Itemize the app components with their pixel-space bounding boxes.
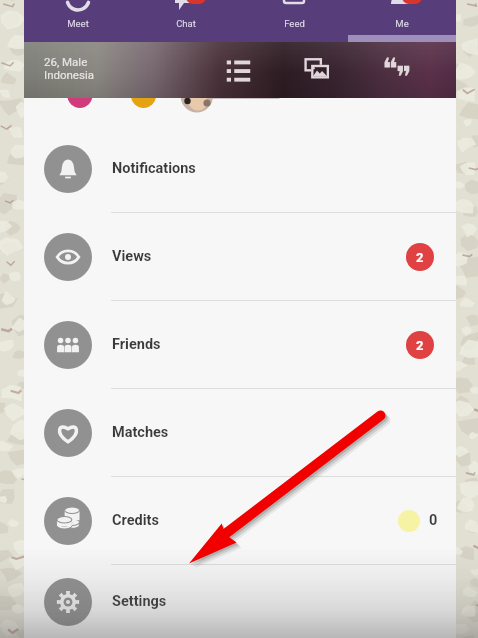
button[interactable]: List view xyxy=(214,42,262,98)
button[interactable]: Feed xyxy=(240,0,348,42)
button[interactable]: Credits xyxy=(24,477,456,564)
button[interactable]: Me xyxy=(348,0,456,42)
staticText: 2 xyxy=(416,250,424,265)
staticText: Chat xyxy=(176,18,196,29)
staticText: Credits xyxy=(112,512,159,529)
staticText: Settings xyxy=(112,593,167,610)
button[interactable]: Quotes xyxy=(374,42,422,98)
staticText: Notifications xyxy=(112,160,196,177)
staticText: Views xyxy=(112,248,152,265)
button[interactable]: Settings xyxy=(24,565,456,638)
button[interactable]: Chat xyxy=(132,0,240,42)
staticText: 2 xyxy=(416,338,424,353)
staticText: Indonesia xyxy=(44,68,94,81)
button[interactable]: Views xyxy=(24,213,456,300)
staticText: Me xyxy=(395,18,409,29)
staticText: Meet xyxy=(67,18,89,29)
staticText: Matches xyxy=(112,424,169,441)
staticText: ❞ xyxy=(396,60,412,94)
staticText: Feed xyxy=(284,18,305,29)
staticText: Friends xyxy=(112,336,161,353)
button[interactable]: Photos xyxy=(293,42,341,98)
button[interactable]: Notifications xyxy=(24,125,456,212)
button[interactable]: Meet xyxy=(24,0,132,42)
staticText: 26, Male xyxy=(44,55,88,68)
button[interactable]: Friends xyxy=(24,301,456,388)
staticText: 0 xyxy=(429,512,438,529)
staticText: ❝ xyxy=(382,52,398,86)
button[interactable]: Matches xyxy=(24,389,456,476)
